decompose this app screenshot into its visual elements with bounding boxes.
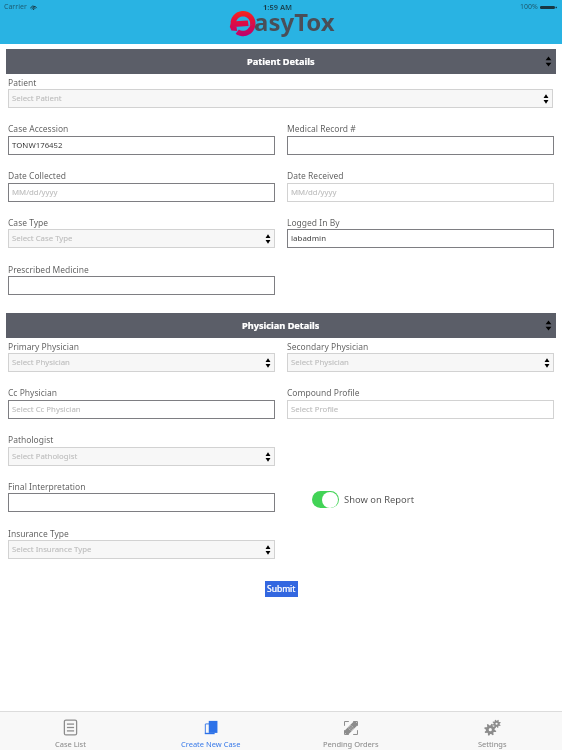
- staticText: Select Case Type: [12, 233, 73, 244]
- button[interactable]: [8, 493, 275, 512]
- staticText: Select Cc Physician: [12, 404, 81, 415]
- button[interactable]: [287, 136, 554, 155]
- staticText: Select Pathologist: [12, 451, 78, 462]
- staticText: labadmin: [291, 233, 327, 244]
- button[interactable]: Patient Details: [6, 49, 556, 74]
- staticText: TONW176452: [12, 140, 63, 151]
- staticText: Settings: [478, 739, 507, 749]
- staticText: Select Physician: [291, 357, 349, 368]
- button[interactable]: Create New Case: [141, 712, 281, 750]
- button[interactable]: Case List: [0, 712, 140, 750]
- staticText: Create New Case: [181, 739, 241, 749]
- staticText: Physician Details: [242, 319, 320, 332]
- staticText: Prescribed Medicine: [8, 264, 89, 276]
- staticText: Submit: [267, 583, 296, 595]
- staticText: Date Received: [287, 170, 344, 182]
- staticText: Compound Profile: [287, 387, 360, 399]
- button[interactable]: Settings: [422, 712, 562, 750]
- button[interactable]: MM/dd/yyyy: [8, 183, 275, 202]
- staticText: Logged In By: [287, 217, 340, 229]
- staticText: MM/dd/yyyy: [291, 187, 337, 198]
- staticText: Primary Physician: [8, 341, 79, 353]
- staticText: 1:59 AM: [263, 2, 293, 12]
- staticText: Carrier: [4, 2, 27, 12]
- staticText: asyTox: [254, 5, 335, 38]
- button[interactable]: Select Case Type: [8, 229, 275, 248]
- button[interactable]: Select Insurance Type: [8, 540, 275, 559]
- staticText: Date Collected: [8, 170, 66, 182]
- button[interactable]: Select Physician: [8, 353, 275, 372]
- staticText: Patient Details: [247, 55, 315, 68]
- staticText: Insurance Type: [8, 528, 69, 540]
- button[interactable]: Select Physician: [287, 353, 554, 372]
- staticText: Pending Orders: [323, 739, 379, 749]
- staticText: Select Patient: [12, 93, 62, 104]
- button[interactable]: Select Profile: [287, 400, 554, 419]
- button[interactable]: TONW176452: [8, 136, 275, 155]
- staticText: Final Interpretation: [8, 481, 86, 493]
- staticText: Pathologist: [8, 434, 54, 446]
- button[interactable]: MM/dd/yyyy: [287, 183, 554, 202]
- staticText: Case Accession: [8, 123, 69, 135]
- staticText: Select Profile: [291, 404, 339, 415]
- staticText: Case List: [55, 739, 86, 749]
- button[interactable]: [8, 276, 275, 295]
- button[interactable]: Select Cc Physician: [8, 400, 275, 419]
- button[interactable]: Pending Orders: [281, 712, 421, 750]
- staticText: Case Type: [8, 217, 49, 229]
- staticText: MM/dd/yyyy: [12, 187, 58, 198]
- staticText: Medical Record #: [287, 123, 356, 135]
- button[interactable]: Select Pathologist: [8, 447, 275, 466]
- staticText: Cc Physician: [8, 387, 57, 399]
- staticText: Show on Report: [344, 493, 415, 506]
- staticText: Patient: [8, 77, 37, 89]
- button[interactable]: Submit: [265, 581, 298, 597]
- button[interactable]: labadmin: [287, 229, 554, 248]
- button[interactable]: Select Patient: [8, 89, 553, 108]
- staticText: Secondary Physician: [287, 341, 369, 353]
- button[interactable]: Physician Details: [6, 313, 556, 338]
- staticText: 100%: [520, 2, 538, 12]
- button[interactable]: Show on Report: [312, 491, 415, 508]
- staticText: Select Physician: [12, 357, 70, 368]
- staticText: Select Insurance Type: [12, 544, 92, 555]
